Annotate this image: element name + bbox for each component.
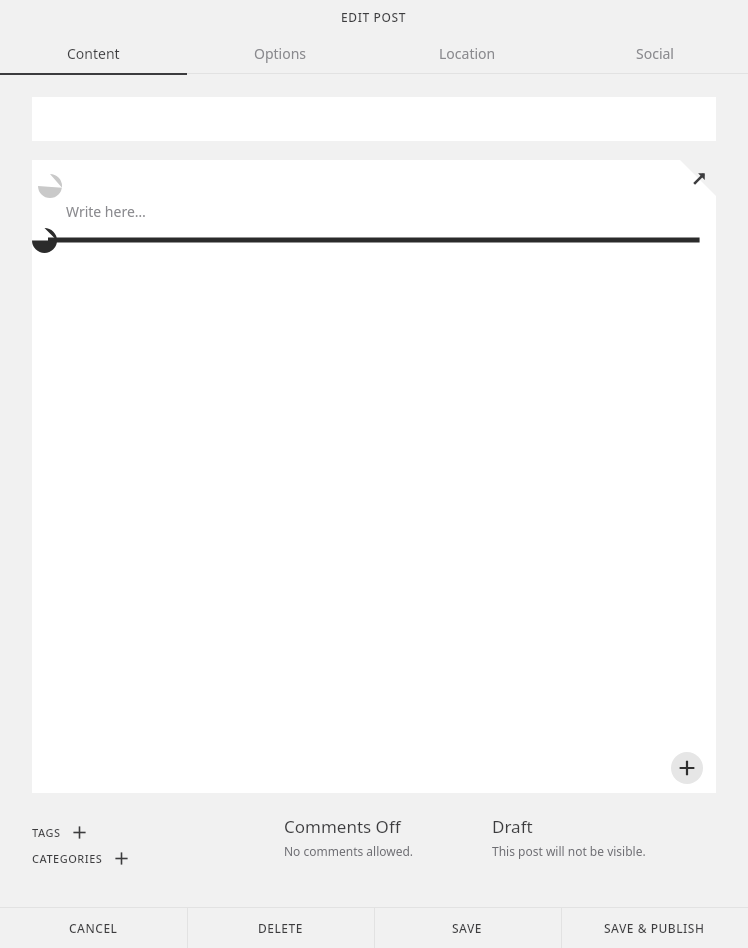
button[interactable]: Write here… xyxy=(66,202,748,228)
button[interactable]: Content xyxy=(0,33,187,73)
staticText: Content xyxy=(67,44,120,63)
button[interactable]: SAVE & PUBLISH xyxy=(561,908,748,948)
button[interactable]: Comments Off xyxy=(284,815,474,859)
staticText: CANCEL xyxy=(69,920,118,936)
staticText: Social xyxy=(636,44,674,63)
button[interactable]: Expand editor xyxy=(688,168,710,190)
button[interactable]: DELETE xyxy=(187,908,374,948)
staticText: No comments allowed. xyxy=(284,843,414,859)
staticText: Options xyxy=(254,44,307,63)
button[interactable]: Social xyxy=(561,33,748,73)
button[interactable]: Options xyxy=(187,33,374,73)
staticText: SAVE xyxy=(452,920,483,936)
staticText: CATEGORIES xyxy=(32,851,103,866)
staticText: Draft xyxy=(492,815,533,838)
staticText: EDIT POST xyxy=(341,9,407,25)
button[interactable]: CATEGORIES xyxy=(32,845,128,871)
staticText: Location xyxy=(439,44,496,63)
button[interactable]: CANCEL xyxy=(0,908,187,948)
button[interactable]: Draft xyxy=(492,815,712,859)
staticText: Write here… xyxy=(66,202,146,221)
staticText: TAGS xyxy=(32,825,61,840)
staticText: Comments Off xyxy=(284,815,401,838)
staticText: DELETE xyxy=(258,920,303,936)
button[interactable]: Add media xyxy=(671,752,703,784)
staticText: SAVE & PUBLISH xyxy=(604,920,705,936)
button[interactable]: TAGS xyxy=(32,819,86,845)
staticText: This post will not be visible. xyxy=(492,843,646,859)
button[interactable]: SAVE xyxy=(374,908,561,948)
button[interactable]: Location xyxy=(374,33,561,73)
